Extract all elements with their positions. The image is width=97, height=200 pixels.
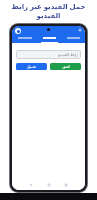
button[interactable] <box>61 35 85 43</box>
button[interactable]: رابط الفيديو <box>16 50 81 59</box>
staticText: حمل الفيديو عبر رابط الفيديو <box>0 2 97 20</box>
button[interactable]: تحميل <box>16 63 47 70</box>
button[interactable]: لصق <box>50 63 81 70</box>
button[interactable]: Home <box>46 182 52 188</box>
button[interactable]: App icon <box>15 28 21 34</box>
staticText: رابط الفيديو <box>58 52 78 57</box>
staticText: تحميل <box>27 65 36 69</box>
button[interactable] <box>12 35 37 43</box>
button[interactable] <box>37 35 61 43</box>
staticText: لصق <box>62 65 70 69</box>
button[interactable]: Recents <box>63 182 69 188</box>
button[interactable]: Back <box>28 182 34 188</box>
button[interactable]: More options <box>78 28 82 32</box>
